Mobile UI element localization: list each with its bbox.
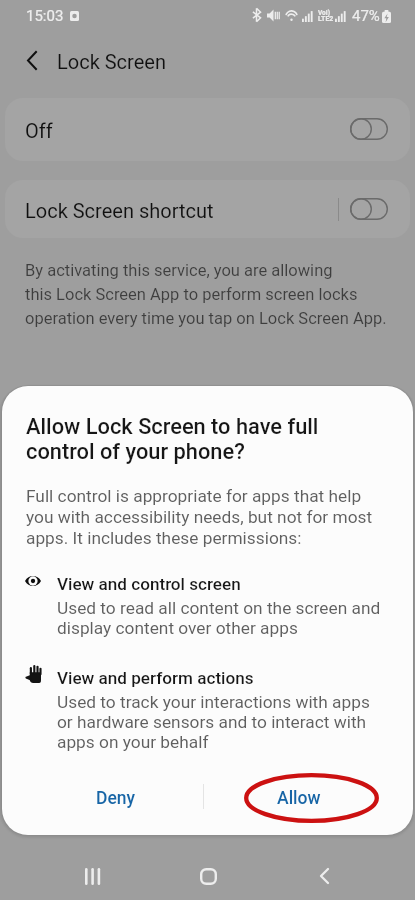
staticText: Allow Lock Screen to have full (26, 414, 319, 440)
staticText: or hardware sensors and to interact with (57, 712, 367, 732)
staticText: Allow (277, 788, 321, 809)
staticText: Lock Screen shortcut (25, 199, 214, 222)
button[interactable]: Recent apps (70, 854, 114, 898)
staticText: Full control is appropriate for apps tha… (26, 486, 362, 506)
button[interactable]: Home (186, 854, 230, 898)
staticText: Deny (96, 788, 136, 809)
staticText: 15:03 (26, 7, 64, 25)
staticText: display content over other apps (57, 618, 298, 638)
staticText: Used to track your interactions with app… (57, 692, 370, 712)
button[interactable]: Allow (209, 773, 389, 823)
staticText: Used to read all content on the screen a… (57, 598, 381, 618)
staticText: Lock Screen (57, 50, 166, 73)
staticText: 47% (352, 7, 380, 25)
staticText: By activating this service, you are allo… (25, 261, 333, 280)
staticText: Off (25, 119, 53, 142)
staticText: View and control screen (57, 574, 241, 594)
button[interactable]: Toggle Off (350, 118, 388, 140)
staticText: apps on your behalf (57, 732, 209, 752)
staticText: operation every time you tap on Lock Scr… (25, 309, 387, 328)
button[interactable]: Toggle Lock Screen shortcut (350, 198, 388, 220)
staticText: you with accessibility needs, but not fo… (26, 507, 373, 527)
staticText: this Lock Screen App to perform screen l… (25, 285, 358, 304)
staticText: LTE2 (318, 15, 334, 23)
button[interactable]: Navigate up (10, 38, 54, 82)
staticText: VoI) (318, 9, 330, 17)
staticText: View and perform actions (57, 668, 254, 688)
button[interactable] (5, 180, 410, 238)
button[interactable]: Deny (26, 773, 206, 823)
button[interactable] (5, 98, 410, 161)
button[interactable]: Back (302, 854, 346, 898)
staticText: control of your phone? (26, 439, 245, 465)
staticText: apps. It includes these permissions: (26, 528, 302, 548)
